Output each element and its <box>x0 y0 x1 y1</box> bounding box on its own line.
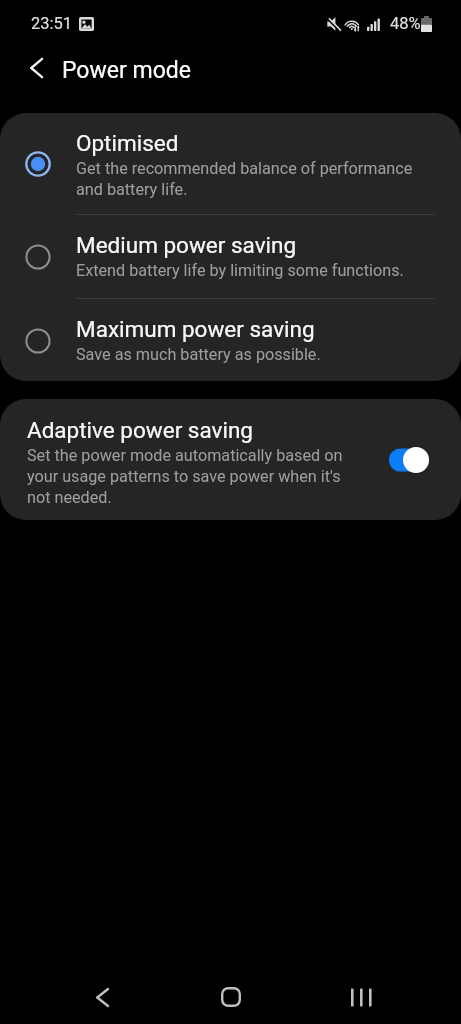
button[interactable]: Medium power saving <box>0 215 461 298</box>
staticText: Adaptive power saving <box>27 417 253 443</box>
staticText: Maximum power saving <box>76 316 315 342</box>
button[interactable]: Adaptive power saving <box>0 399 461 520</box>
staticText: Medium power saving <box>76 232 297 258</box>
button[interactable]: Maximum power saving <box>0 299 461 381</box>
button[interactable]: Adaptive power saving <box>380 443 432 477</box>
staticText: 48% <box>390 14 421 33</box>
staticText: Save as much battery as possible. <box>76 345 321 364</box>
staticText: Optimised <box>76 130 179 156</box>
button[interactable]: Back <box>72 967 132 1024</box>
button[interactable]: Recent apps <box>331 967 391 1024</box>
staticText: Get the recommended balance of performan… <box>76 159 434 199</box>
staticText: Set the power mode automatically based o… <box>27 446 357 507</box>
button[interactable]: Optimised <box>0 113 461 214</box>
staticText: Power mode <box>62 57 191 84</box>
button[interactable]: Home <box>201 967 261 1024</box>
staticText: 23:51 <box>31 14 73 33</box>
staticText: Extend battery life by limiting some fun… <box>76 261 404 280</box>
button[interactable]: Navigate up <box>16 48 56 88</box>
